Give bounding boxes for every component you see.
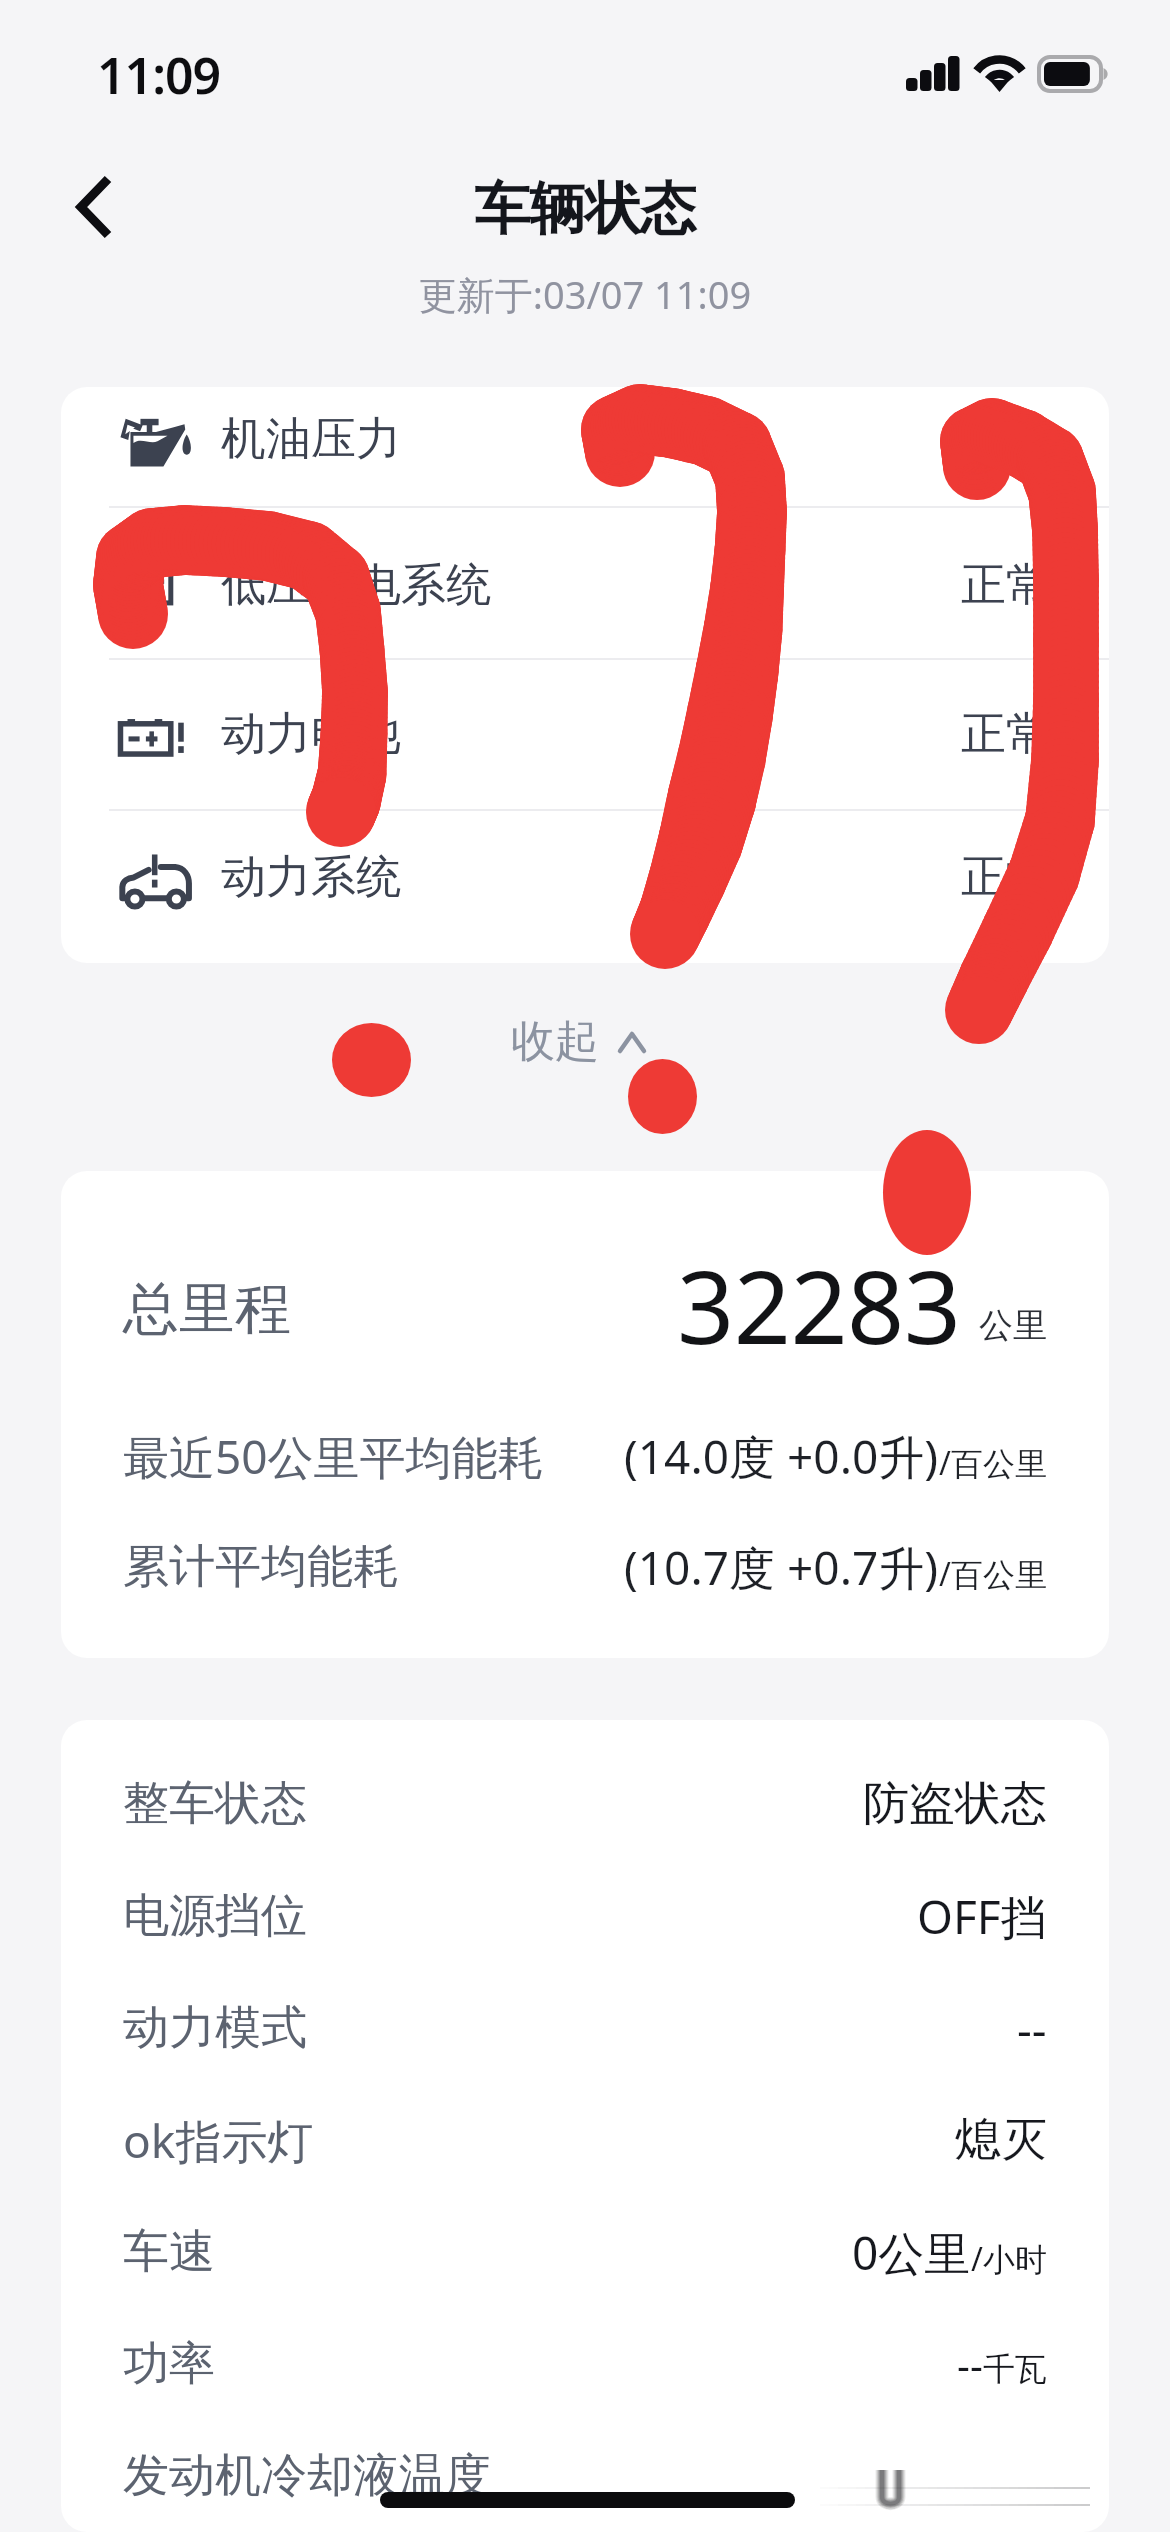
staticText: 机油压力 — [221, 411, 401, 468]
staticText: 收起 — [511, 1014, 599, 1069]
staticText: 正常 — [961, 706, 1051, 763]
staticText: 累计平均能耗 — [123, 1538, 399, 1596]
staticText: 正常 — [961, 849, 1051, 906]
staticText: 发动机冷却液温度 — [123, 2447, 491, 2505]
staticText: 动力系统 — [221, 849, 401, 906]
button[interactable]: 发动机冷却液温度 — [123, 2420, 1047, 2532]
staticText: 最近50公里平均能耗 — [123, 1425, 544, 1488]
button[interactable]: 低压供电系统 — [61, 507, 1109, 659]
staticText: 公里 — [979, 1304, 1047, 1347]
staticText: 正常 — [961, 411, 1051, 468]
staticText: 千瓦 — [983, 2349, 1047, 2389]
button[interactable]: 车速 — [123, 2196, 1047, 2308]
staticText: 总里程 — [123, 1274, 291, 1345]
staticText: 11:09 — [97, 41, 221, 109]
button[interactable]: ok指示灯 — [123, 2084, 1047, 2196]
button[interactable]: 动力系统 — [61, 810, 1109, 963]
button[interactable]: 整车状态 — [123, 1748, 1047, 1860]
staticText: 动力模式 — [123, 1999, 307, 2057]
button[interactable]: 动力模式 — [123, 1972, 1047, 2084]
staticText: 整车状态 — [123, 1775, 307, 1833]
staticText: (10.7度 +0.7升) — [624, 1536, 939, 1599]
staticText: 防盗状态 — [863, 1775, 1047, 1833]
button[interactable]: 动力电池 — [61, 659, 1109, 810]
staticText: /小时 — [971, 2237, 1047, 2281]
button[interactable]: 功率 — [123, 2308, 1047, 2420]
button[interactable]: 电源挡位 — [123, 1860, 1047, 1972]
button[interactable]: Back — [32, 154, 152, 274]
staticText: 更新于:03/07 11:09 — [0, 268, 1170, 320]
staticText: 32283 — [677, 1237, 961, 1347]
staticText: ok指示灯 — [123, 2109, 314, 2172]
staticText: OFF挡 — [917, 1885, 1047, 1948]
staticText: -- — [1017, 1997, 1047, 2060]
staticText: 正常 — [961, 557, 1051, 614]
staticText: 动力电池 — [221, 706, 401, 763]
staticText: 功率 — [123, 2335, 215, 2393]
staticText: 熄灭 — [955, 2111, 1047, 2169]
staticText: 低压供电系统 — [221, 557, 491, 614]
staticText: 电源挡位 — [123, 1887, 307, 1945]
staticText: -- — [957, 2337, 983, 2391]
staticText: /百公里 — [939, 1552, 1047, 1596]
staticText: (14.0度 +0.0升) — [624, 1425, 939, 1488]
button[interactable]: 收起 — [0, 1001, 1163, 1081]
staticText: 车速 — [123, 2223, 215, 2281]
staticText: 车辆状态 — [0, 174, 1170, 245]
staticText: 0公里 — [852, 2221, 971, 2284]
staticText: /百公里 — [939, 1441, 1047, 1485]
button[interactable]: 机油压力 — [61, 387, 1109, 507]
